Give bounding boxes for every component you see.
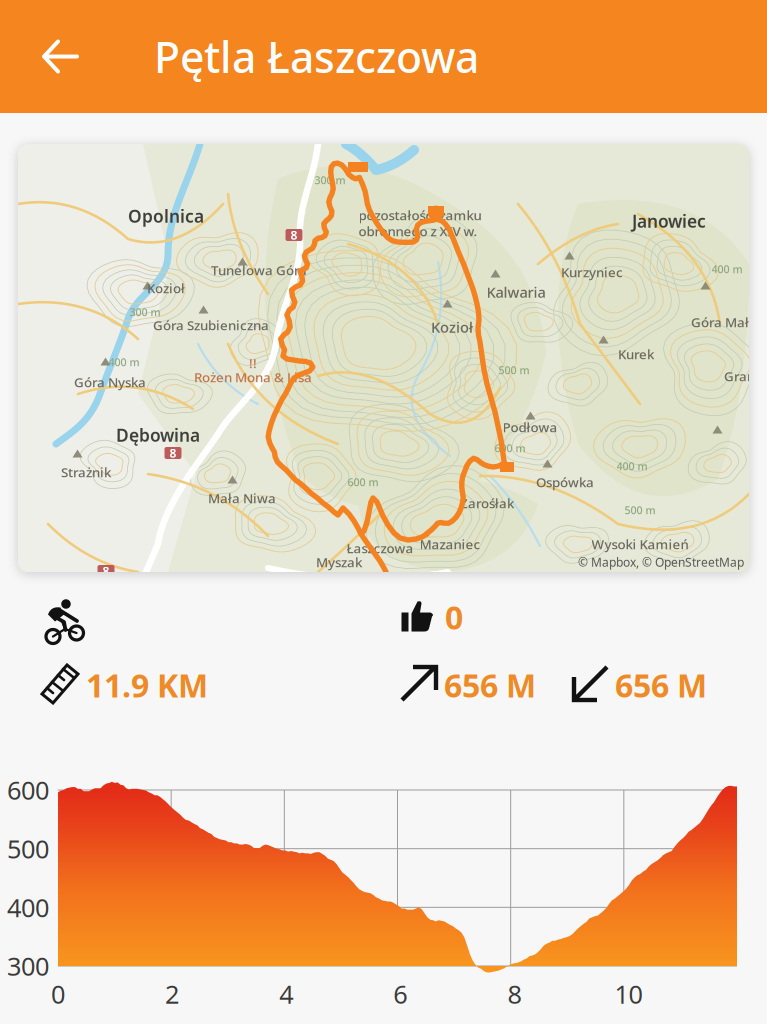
staticText: Rożen Mona & Lisa xyxy=(194,368,312,386)
button[interactable]: Back xyxy=(29,25,91,87)
staticText: Zarośłak xyxy=(460,494,514,512)
staticText: Myszak xyxy=(316,553,362,571)
staticText: 500 m xyxy=(624,503,655,517)
staticText: 11.9 KM xyxy=(86,664,208,706)
staticText: 300 xyxy=(7,949,49,983)
staticText: Pętla Łaszczowa xyxy=(154,28,479,85)
staticText: Opolnica xyxy=(128,204,204,227)
staticText: 8 xyxy=(290,227,297,243)
staticText: obronnego z XIV w. xyxy=(358,222,477,240)
staticText: 400 xyxy=(7,890,49,924)
staticText: 600 xyxy=(7,773,49,807)
staticText: !! xyxy=(249,354,257,372)
staticText: 600 m xyxy=(347,475,378,489)
staticText: Kozioł xyxy=(431,317,473,337)
staticText: 656 M xyxy=(444,664,536,706)
staticText: 600 m xyxy=(494,441,525,455)
staticText: Góra Nyska xyxy=(74,373,146,391)
staticText: Mazaniec xyxy=(419,535,480,553)
staticText: 400 m xyxy=(108,355,139,369)
staticText: Tunelowa Góra xyxy=(211,261,307,279)
staticText: 4 xyxy=(279,977,293,1011)
staticText: 300 m xyxy=(314,173,345,187)
staticText: 500 m xyxy=(498,363,529,377)
staticText: 8 xyxy=(507,977,521,1011)
staticText: Góra Szubieniczna xyxy=(153,316,269,334)
staticText: Góra Mała xyxy=(691,313,757,331)
staticText: 2 xyxy=(165,977,179,1011)
staticText: Łaszczowa xyxy=(346,539,413,557)
staticText: © Mapbox, © OpenStreetMap xyxy=(578,554,744,570)
staticText: Graniec xyxy=(724,367,767,385)
staticText: 656 M xyxy=(615,664,707,706)
staticText: Mała Niwa xyxy=(208,489,276,507)
staticText: 0 xyxy=(445,596,463,638)
staticText: 400 m xyxy=(711,262,742,276)
staticText: 6 xyxy=(393,977,407,1011)
staticText: Kurek xyxy=(618,345,654,363)
staticText: 300 m xyxy=(129,305,160,319)
staticText: Strażnik xyxy=(61,463,111,481)
staticText: Kurzyniec xyxy=(561,263,623,281)
staticText: 0 xyxy=(51,977,65,1011)
staticText: 8 xyxy=(169,445,176,461)
staticText: Wysoki Kamień xyxy=(591,535,688,553)
staticText: Podłowa xyxy=(502,418,557,436)
staticText: Dębowina xyxy=(116,423,200,446)
staticText: 8 xyxy=(102,563,109,579)
staticText: 500 xyxy=(7,832,49,865)
staticText: pozostałości zamku xyxy=(358,206,481,224)
staticText: Kalwaria xyxy=(486,282,545,302)
staticText: Janowiec xyxy=(632,209,706,232)
staticText: Kozioł xyxy=(147,279,185,297)
staticText: 10 xyxy=(615,977,643,1011)
staticText: 400 m xyxy=(616,459,647,473)
staticText: Ospówka xyxy=(536,473,594,491)
